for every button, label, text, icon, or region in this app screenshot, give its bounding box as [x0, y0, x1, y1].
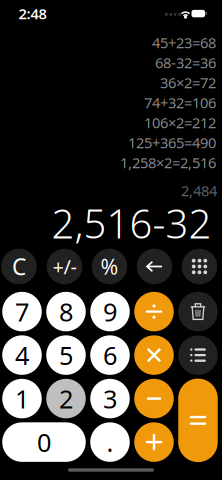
- button[interactable]: Keypad layout: [182, 249, 217, 284]
- button[interactable]: Backspace: [137, 249, 172, 284]
- button[interactable]: +/-: [47, 249, 82, 284]
- staticText: 9: [103, 295, 117, 328]
- button[interactable]: 9: [90, 292, 130, 331]
- staticText: C: [12, 251, 26, 281]
- staticText: 68-32=36: [155, 53, 216, 72]
- button[interactable]: C: [1, 249, 37, 284]
- button[interactable]: Equals: [178, 379, 218, 462]
- staticText: 5: [59, 338, 73, 372]
- button[interactable]: 0: [2, 422, 86, 462]
- staticText: +/-: [52, 253, 76, 280]
- button[interactable]: .: [90, 422, 130, 462]
- staticText: 4: [15, 338, 29, 372]
- staticText: 1,258×2=2,516: [120, 153, 216, 172]
- button[interactable]: Subtract: [134, 379, 174, 418]
- staticText: 36×2=72: [160, 73, 216, 92]
- button[interactable]: Multiply: [134, 335, 174, 375]
- button[interactable]: 7: [2, 292, 42, 331]
- button[interactable]: Show history: [178, 335, 218, 375]
- button[interactable]: 3: [90, 379, 130, 418]
- staticText: 106×2=212: [144, 113, 216, 132]
- staticText: 74+32=106: [144, 93, 216, 112]
- staticText: 2:48: [18, 4, 46, 23]
- button[interactable]: 6: [90, 335, 130, 375]
- staticText: 7: [15, 295, 29, 328]
- staticText: %: [100, 252, 118, 281]
- button[interactable]: %: [92, 249, 127, 284]
- staticText: 2,484: [181, 181, 217, 200]
- staticText: 6: [103, 338, 117, 372]
- button[interactable]: 1: [2, 379, 42, 418]
- button[interactable]: 8: [46, 292, 86, 331]
- staticText: 3: [103, 382, 117, 415]
- button[interactable]: 4: [2, 335, 42, 375]
- staticText: 2,516-32: [51, 196, 211, 249]
- staticText: 45+23=68: [152, 33, 216, 52]
- staticText: 8: [59, 295, 73, 328]
- staticText: 125+365=490: [128, 133, 216, 152]
- button[interactable]: 5: [46, 335, 86, 375]
- button[interactable]: 2: [46, 379, 86, 418]
- staticText: 0: [37, 425, 51, 459]
- button[interactable]: Clear history: [178, 292, 218, 331]
- staticText: 1: [15, 382, 29, 415]
- staticText: 2: [59, 382, 73, 415]
- button[interactable]: Add: [134, 422, 174, 462]
- button[interactable]: Divide: [134, 292, 174, 331]
- staticText: .: [106, 425, 113, 459]
